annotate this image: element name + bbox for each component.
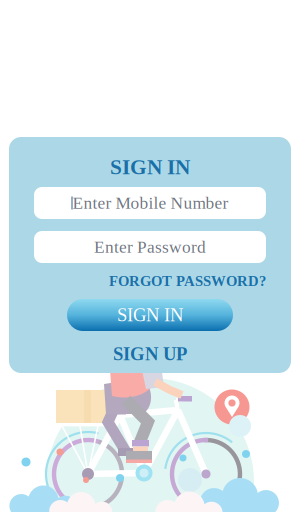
button[interactable]: SIGN IN xyxy=(67,299,233,331)
button[interactable]: SIGN UP xyxy=(9,344,291,364)
button[interactable]: FORGOT PASSWORD? xyxy=(34,273,266,289)
staticText: SIGN IN xyxy=(117,305,183,325)
staticText: Enter Password xyxy=(94,237,206,257)
staticText: SIGN IN xyxy=(110,155,190,179)
staticText: Enter Mobile Number xyxy=(72,193,228,213)
staticText: SIGN UP xyxy=(113,344,187,364)
staticText: FORGOT PASSWORD? xyxy=(109,273,266,289)
